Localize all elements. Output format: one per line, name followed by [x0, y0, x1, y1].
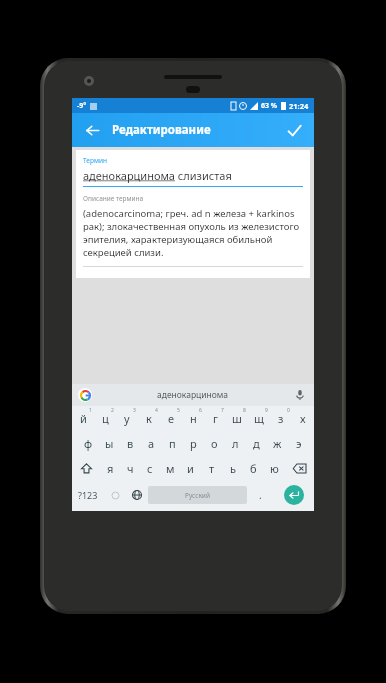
button[interactable]: . [247, 481, 274, 509]
staticText: у [124, 411, 130, 426]
button[interactable]: Change language [126, 481, 148, 509]
staticText: х [300, 411, 306, 426]
staticText: л [232, 436, 239, 451]
button[interactable]: 0 [270, 406, 292, 431]
staticText: ц [102, 411, 109, 426]
button[interactable]: аденокарцинома [157, 389, 229, 401]
staticText: 3 [133, 407, 136, 414]
staticText: 9 [265, 407, 268, 414]
staticText: . [259, 488, 262, 502]
button[interactable]: о [204, 431, 225, 456]
button[interactable]: Save [280, 116, 308, 144]
button[interactable]: 4 [138, 406, 160, 431]
staticText: н [190, 411, 197, 426]
staticText: ж [273, 436, 282, 451]
button[interactable]: ф [77, 431, 99, 456]
button[interactable]: т [201, 456, 222, 481]
staticText: й [80, 411, 87, 426]
staticText: ш [232, 411, 242, 426]
staticText: слизистая [175, 168, 232, 183]
button[interactable]: ж [267, 431, 288, 456]
staticText: 21:24 [289, 101, 309, 111]
button[interactable]: 2 [94, 406, 116, 431]
button[interactable]: б [243, 456, 264, 481]
staticText: 5 [177, 407, 180, 414]
staticText: м [166, 461, 175, 476]
staticText: с [147, 461, 153, 476]
staticText: з [278, 411, 284, 426]
button[interactable]: (adenocarcinoma; греч. ad n железа + kar… [83, 207, 303, 259]
button[interactable]: Google [78, 388, 92, 402]
button[interactable]: э [288, 431, 309, 456]
staticText: ?123 [78, 489, 98, 501]
staticText: Термин [83, 156, 107, 165]
staticText: а [148, 436, 155, 451]
staticText: ф [84, 436, 93, 451]
staticText: п [169, 436, 176, 451]
button[interactable]: д [246, 431, 267, 456]
staticText: о [211, 436, 218, 451]
button[interactable]: Backspace [285, 456, 314, 481]
button[interactable]: Emoji [104, 481, 126, 509]
staticText: Редактирование [112, 122, 211, 138]
staticText: р [190, 436, 197, 451]
staticText: я [107, 461, 114, 476]
staticText: 8 [243, 407, 246, 414]
button[interactable]: 8 [226, 406, 248, 431]
staticText: ь [230, 461, 236, 476]
staticText: Описание термина [83, 194, 144, 203]
staticText: аденокарцинома [83, 168, 175, 183]
button[interactable]: 9 [248, 406, 270, 431]
button[interactable]: ы [99, 431, 120, 456]
staticText: 6 [199, 407, 202, 414]
staticText: г [213, 411, 218, 426]
button[interactable]: Voice input [293, 388, 307, 402]
button[interactable]: ь [222, 456, 243, 481]
button[interactable]: Back [78, 116, 106, 144]
button[interactable]: Shift [72, 456, 100, 481]
button[interactable]: и [180, 456, 201, 481]
button[interactable]: л [225, 431, 246, 456]
button[interactable]: ч [120, 456, 140, 481]
button[interactable]: 3 [116, 406, 138, 431]
staticText: 0 [287, 407, 290, 414]
staticText: к [146, 411, 152, 426]
staticText: ч [127, 461, 134, 476]
button[interactable]: х [292, 406, 314, 431]
staticText: 63 % [261, 101, 278, 111]
button[interactable]: ?123 [72, 481, 104, 509]
staticText: б [250, 461, 257, 476]
button[interactable]: 7 [204, 406, 226, 431]
button[interactable]: а [141, 431, 162, 456]
staticText: т [209, 461, 215, 476]
button[interactable]: аденокарцинома [83, 168, 232, 183]
staticText: ы [105, 436, 114, 451]
button[interactable]: я [100, 456, 120, 481]
button[interactable]: п [162, 431, 183, 456]
button[interactable]: 1 [72, 406, 94, 431]
button[interactable]: с [140, 456, 160, 481]
button[interactable]: Русский [148, 486, 247, 504]
staticText: д [253, 436, 260, 451]
staticText: 1 [89, 407, 92, 414]
button[interactable]: м [160, 456, 180, 481]
staticText: э [296, 436, 302, 451]
staticText: -9° [77, 101, 87, 111]
button[interactable]: в [120, 431, 141, 456]
staticText: 4 [155, 407, 158, 414]
staticText: 7 [221, 407, 224, 414]
staticText: Русский [185, 491, 210, 500]
button[interactable]: 5 [160, 406, 182, 431]
staticText: 2 [111, 407, 114, 414]
button[interactable]: 6 [182, 406, 204, 431]
button[interactable]: Enter [284, 485, 304, 505]
button[interactable]: р [183, 431, 204, 456]
staticText: щ [254, 411, 264, 426]
staticText: в [127, 436, 134, 451]
staticText: е [168, 411, 175, 426]
staticText: ю [270, 461, 279, 476]
staticText: и [187, 461, 194, 476]
button[interactable]: ю [264, 456, 285, 481]
